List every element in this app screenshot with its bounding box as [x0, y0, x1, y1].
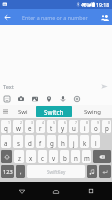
button[interactable]: Add contact	[97, 10, 112, 25]
button[interactable]: Enter	[99, 165, 111, 178]
staticText: Switch	[44, 108, 64, 116]
staticText: 7	[75, 120, 77, 125]
staticText: e	[28, 124, 32, 132]
button[interactable]: 7	[69, 120, 78, 133]
button[interactable]: v	[49, 150, 58, 163]
staticText: u	[72, 124, 76, 132]
staticText: m	[84, 154, 90, 162]
staticText: Text	[3, 83, 99, 91]
button[interactable]: z	[14, 150, 24, 163]
button[interactable]: h	[58, 135, 67, 148]
button[interactable]: 3	[25, 120, 34, 133]
staticText: q	[4, 124, 8, 132]
button[interactable]: Swi	[10, 105, 36, 118]
button[interactable]: Recent apps	[78, 182, 104, 200]
button[interactable]: 9	[91, 120, 100, 133]
button[interactable]: 0	[102, 120, 111, 133]
staticText: 3	[31, 120, 33, 125]
button[interactable]: a	[1, 135, 11, 148]
button[interactable]: k	[80, 135, 89, 148]
staticText: p	[105, 124, 109, 132]
staticText: z	[18, 154, 21, 162]
staticText: n	[74, 154, 78, 162]
button[interactable]: Gallery	[28, 93, 42, 104]
staticText: Swing	[84, 108, 101, 116]
button[interactable]: Emoji	[87, 165, 97, 178]
staticText: 123	[3, 168, 13, 176]
button[interactable]: Backspace	[93, 150, 111, 163]
button[interactable]: 123	[1, 165, 14, 178]
staticText: l	[95, 139, 97, 147]
staticText: d	[28, 139, 32, 147]
button[interactable]: More options	[70, 93, 84, 104]
staticText: Swi	[18, 108, 28, 116]
staticText: w	[16, 124, 21, 132]
button[interactable]: d	[25, 135, 34, 148]
staticText: i	[84, 124, 86, 132]
staticText: v	[52, 154, 56, 162]
button[interactable]: Location	[42, 93, 56, 104]
staticText: 8	[86, 120, 88, 125]
staticText: 46%	[81, 2, 91, 8]
staticText: o	[94, 124, 98, 132]
button[interactable]: Camera	[14, 93, 28, 104]
staticText: k	[83, 139, 87, 147]
staticText: 1	[8, 120, 10, 125]
staticText: 6	[64, 120, 66, 125]
staticText: h	[61, 139, 65, 147]
button[interactable]: l	[91, 135, 100, 148]
staticText: g	[50, 139, 54, 147]
button[interactable]: Back	[9, 182, 35, 200]
button[interactable]: 6	[58, 120, 67, 133]
staticText: b	[63, 154, 67, 162]
button[interactable]: 2	[13, 120, 23, 133]
button[interactable]: 8	[80, 120, 89, 133]
button[interactable]: m	[82, 150, 91, 163]
button[interactable]: f	[36, 135, 45, 148]
staticText: 19:18	[96, 1, 110, 8]
button[interactable]: c	[38, 150, 47, 163]
button[interactable]: b	[60, 150, 69, 163]
button[interactable]: Back	[0, 10, 15, 25]
staticText: y	[61, 124, 65, 132]
staticText: r	[39, 124, 42, 132]
button[interactable]: n	[71, 150, 80, 163]
button[interactable]: Swing	[72, 105, 112, 118]
staticText: 5	[53, 120, 55, 125]
button[interactable]: Keyboard menu	[0, 105, 10, 118]
button[interactable]: g	[47, 135, 56, 148]
staticText: 0	[108, 120, 110, 125]
button[interactable]: x	[26, 150, 36, 163]
button[interactable]: 1	[1, 120, 11, 133]
staticText: 2	[20, 120, 22, 125]
button[interactable]: Shift	[1, 150, 12, 163]
button[interactable]: Switch	[36, 106, 72, 117]
button[interactable]: Home	[43, 182, 69, 200]
staticText: SwiftKey	[47, 169, 66, 175]
button[interactable]: Voice message	[56, 93, 70, 104]
staticText: x	[29, 154, 33, 162]
staticText: 4	[42, 120, 44, 125]
button[interactable]: SwiftKey	[27, 165, 85, 178]
staticText: f	[39, 139, 42, 147]
button[interactable]: Send	[99, 81, 110, 92]
staticText: s	[17, 139, 20, 147]
button[interactable]: Stickers	[0, 93, 14, 104]
button[interactable]: 5	[47, 120, 56, 133]
button[interactable]: j	[69, 135, 78, 148]
staticText: Enter a name or a number	[22, 14, 97, 21]
staticText: a	[4, 139, 8, 147]
button[interactable]: s	[13, 135, 23, 148]
button[interactable]: ,	[16, 165, 25, 178]
staticText: ,	[20, 168, 22, 176]
staticText: 9	[97, 120, 99, 125]
staticText: j	[73, 139, 75, 147]
staticText: c	[41, 154, 44, 162]
staticText: t	[50, 124, 53, 132]
button[interactable]: 4	[36, 120, 45, 133]
